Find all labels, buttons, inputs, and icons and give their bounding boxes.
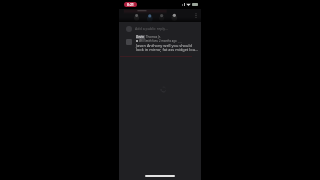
staticText: 8:21 xyxy=(127,2,134,7)
button[interactable]: Devin xyxy=(119,35,201,53)
button[interactable]: More options xyxy=(195,13,197,18)
staticText: 1/3 xyxy=(178,40,182,43)
staticText: Devin xyxy=(136,35,145,39)
button[interactable]: Add a public reply... xyxy=(119,24,201,33)
staticText: Will Smith fans 2 months ago xyxy=(139,39,177,43)
staticText: Thomas Jr. xyxy=(145,35,161,39)
button[interactable]: Video player xyxy=(119,9,201,22)
staticText: Add a public reply... xyxy=(135,26,168,31)
staticText: Jason Anthony well you should look in mi… xyxy=(136,43,199,53)
